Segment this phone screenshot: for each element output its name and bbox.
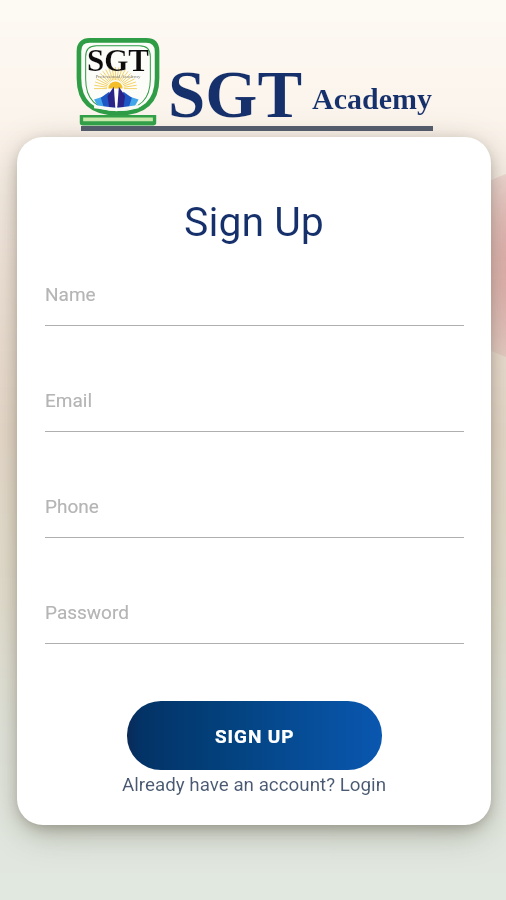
staticText: SGT bbox=[168, 57, 303, 131]
button[interactable]: Email bbox=[45, 390, 464, 432]
staticText: Sign Up bbox=[17, 198, 491, 246]
staticText: Name bbox=[45, 283, 96, 305]
button[interactable]: Password bbox=[45, 602, 464, 644]
other: SGT Academy logo bbox=[76, 38, 160, 126]
staticText: SGT bbox=[76, 43, 160, 77]
button[interactable]: SIGN UP bbox=[127, 701, 382, 770]
button[interactable]: Phone bbox=[45, 496, 464, 538]
staticText: Professional Academy bbox=[76, 74, 160, 80]
button[interactable]: Already have an account? Login bbox=[17, 774, 491, 796]
button[interactable]: Name bbox=[45, 284, 464, 326]
staticText: SIGN UP bbox=[215, 725, 295, 747]
staticText: Academy bbox=[312, 82, 432, 115]
staticText: Phone bbox=[45, 495, 99, 517]
staticText: Password bbox=[45, 601, 129, 623]
staticText: Email bbox=[45, 389, 93, 411]
